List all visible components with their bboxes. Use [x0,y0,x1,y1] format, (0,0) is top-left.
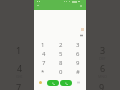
staticText: 2 [59,41,63,49]
button[interactable]: Backspace [76,80,81,85]
staticText: 1 [41,41,45,49]
staticText: 7 [42,59,46,67]
button[interactable]: * [34,68,52,77]
staticText: 5 [59,50,63,58]
staticText: 4 [17,62,23,74]
button[interactable]: 7 [34,59,52,68]
button[interactable]: 2 [52,41,69,50]
staticText: 9 [99,81,105,90]
staticText: 9 [76,59,80,67]
staticText: 6 [100,62,106,74]
staticText: 3 [76,41,80,49]
staticText: 6 [76,50,80,58]
button[interactable]: Menu [35,3,40,8]
staticText: 4 [42,50,46,58]
staticText: 0 [59,68,63,76]
button[interactable]: 1 [34,41,52,50]
staticText: 1 [16,44,22,56]
staticText: 3 [100,44,106,56]
button[interactable]: 3 [69,41,86,50]
button[interactable]: 9 [69,59,86,68]
button[interactable]: Add contact [39,81,42,84]
staticText: * [41,68,45,76]
button[interactable]: 5 [52,50,69,59]
button[interactable]: # [69,68,86,77]
button[interactable]: 0 [52,68,69,77]
button[interactable]: Call SIM 2 [60,80,72,86]
button[interactable]: More options [78,3,83,8]
button[interactable]: 4 [34,50,52,59]
staticText: 8 [59,59,63,67]
button[interactable]: Call SIM 1 [47,80,59,86]
button[interactable]: Backspace [79,33,84,38]
staticText: # [76,68,80,76]
button[interactable]: 8 [52,59,69,68]
staticText: 7 [16,81,22,90]
button[interactable]: 6 [69,50,86,59]
